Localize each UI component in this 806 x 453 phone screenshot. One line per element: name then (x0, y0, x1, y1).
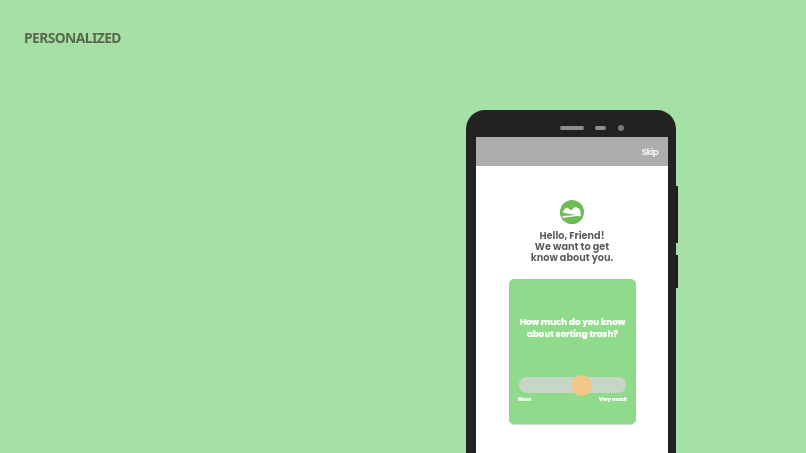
button[interactable]: Skip (630, 139, 668, 164)
button[interactable]: Knowledge level slider (571, 375, 592, 396)
staticText: Hello, Friend! We want to get know about… (476, 229, 668, 265)
staticText: None (518, 396, 532, 403)
staticText: How much do you know about sorting trash… (509, 316, 636, 340)
other: App logo (560, 200, 584, 224)
staticText: PERSONALIZED (24, 28, 121, 47)
staticText: Very much (599, 396, 628, 403)
button[interactable]: How much do you know about sorting trash… (509, 279, 636, 424)
staticText: Skip (642, 146, 659, 157)
